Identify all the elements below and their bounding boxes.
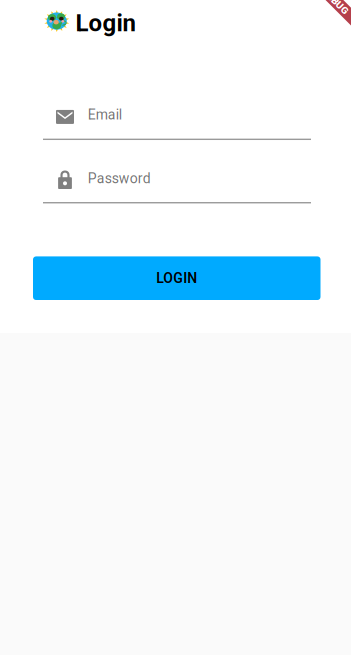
button[interactable]: LOGIN [33, 256, 320, 300]
staticText: Login [75, 9, 135, 37]
staticText: DEBUG [318, 0, 350, 12]
staticText: LOGIN [156, 270, 197, 286]
staticText: Password [88, 170, 151, 187]
staticText: Email [88, 106, 122, 123]
